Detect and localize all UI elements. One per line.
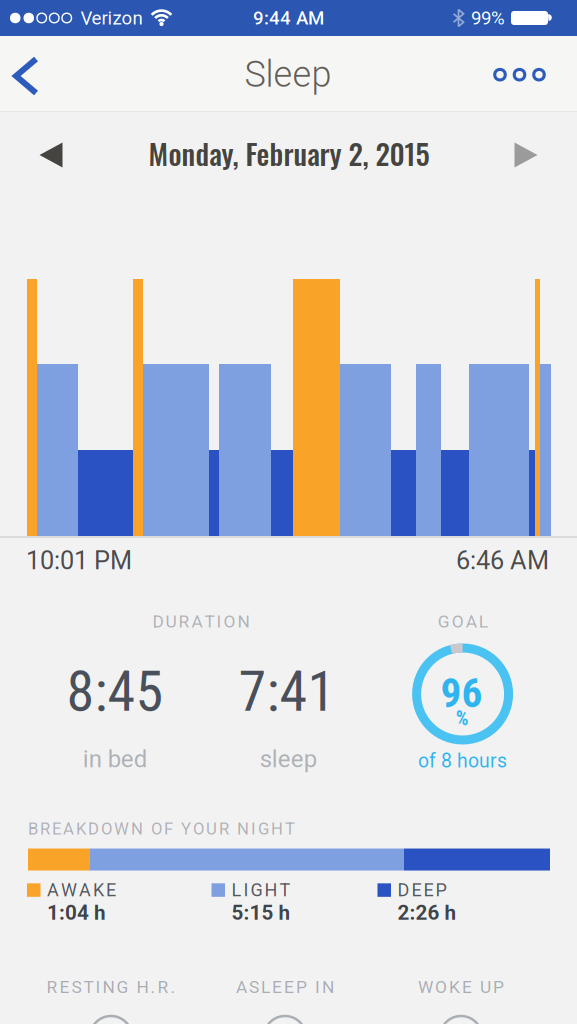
button[interactable]: Next day — [514, 142, 537, 167]
staticText: of 8 hours — [418, 750, 507, 772]
staticText: 2:26 h — [397, 901, 456, 925]
button[interactable]: More options — [495, 69, 544, 80]
staticText: B R E A K D O W N O F Y O U R N I G H T — [28, 819, 295, 838]
staticText: 8:45 — [66, 659, 163, 724]
staticText: 99% — [471, 7, 505, 29]
button[interactable]: Back — [13, 56, 39, 96]
staticText: in bed — [83, 745, 148, 773]
staticText: 10:01 PM — [26, 546, 132, 575]
staticText: Monday, February 2, 2015 — [148, 132, 429, 174]
staticText: A S L E E P I N — [236, 977, 334, 997]
staticText: % — [456, 707, 469, 730]
staticText: 7:41 — [238, 659, 335, 724]
button[interactable]: Previous day — [39, 142, 62, 167]
staticText: 96 — [440, 669, 482, 717]
staticText: Sleep — [244, 53, 331, 96]
staticText: G O A L — [438, 611, 488, 632]
staticText: L I G H T — [231, 879, 290, 901]
staticText: A W A K E — [47, 879, 116, 901]
staticText: R E S T I N G H . R . — [46, 977, 175, 997]
staticText: sleep — [260, 745, 317, 773]
staticText: 6:46 AM — [456, 546, 549, 575]
staticText: W O K E U P — [418, 977, 504, 997]
staticText: 9:44 AM — [253, 7, 324, 29]
staticText: D E E P — [397, 879, 446, 901]
staticText: D U R A T I O N — [152, 611, 249, 632]
staticText: Verizon — [80, 7, 142, 29]
staticText: 5:15 h — [231, 901, 290, 925]
staticText: 1:04 h — [47, 901, 106, 925]
